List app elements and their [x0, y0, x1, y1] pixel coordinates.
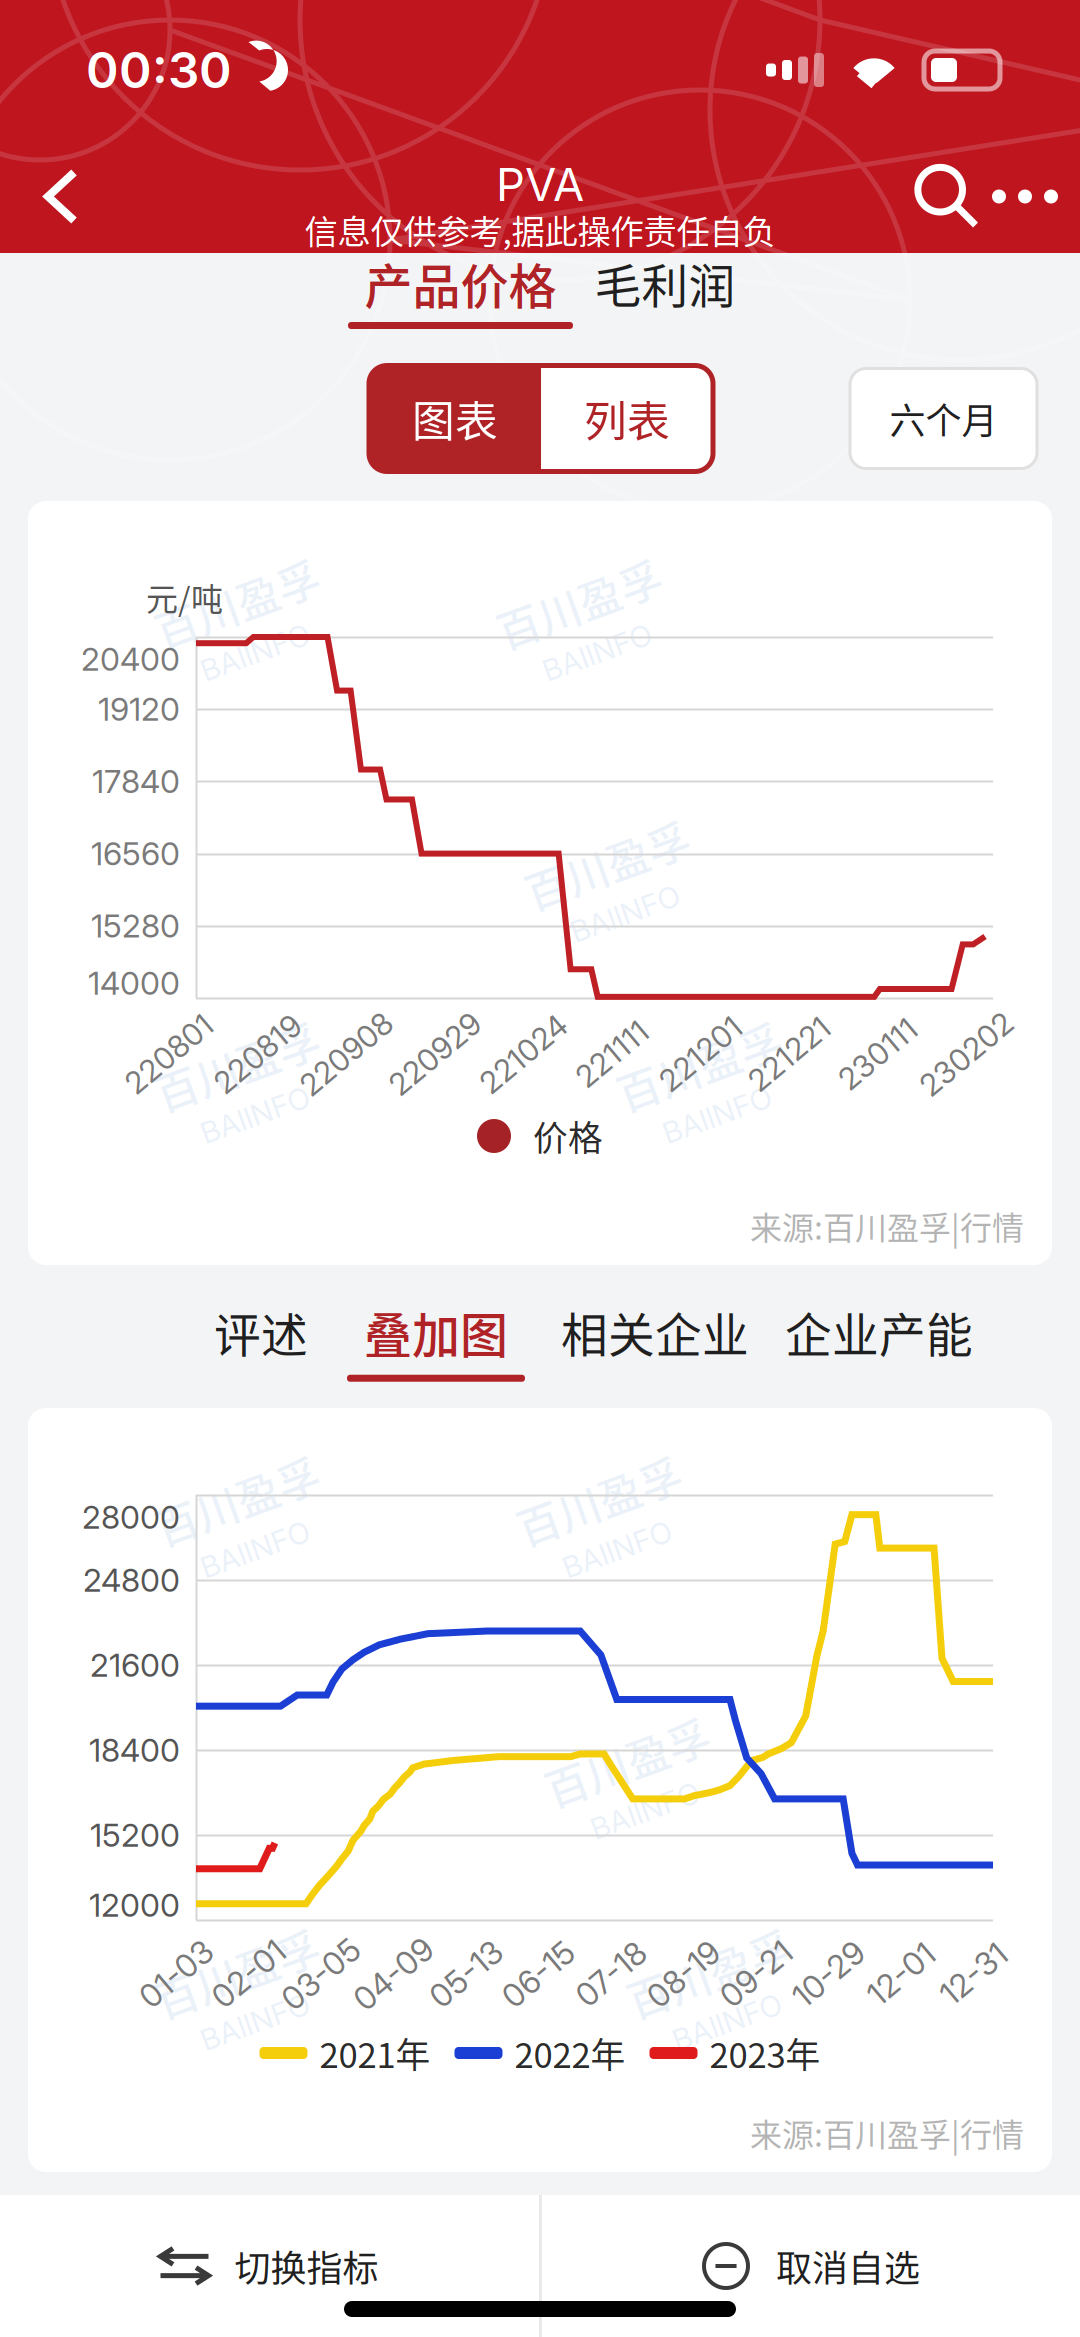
staticText: 产品价格 [364, 248, 556, 318]
staticText: PVA [496, 157, 584, 212]
staticText: 2021年 [319, 2028, 430, 2078]
button[interactable]: 企业产能 [785, 1301, 973, 1370]
staticText: 百川盈孚 [158, 1468, 330, 1530]
staticText: 切换指标 [234, 2240, 378, 2292]
button[interactable]: 评述 [211, 1301, 311, 1370]
staticText: 百川盈孚 [548, 1729, 720, 1791]
staticText: 企业产能 [785, 1298, 973, 1366]
staticText: BAIINFO [187, 1534, 301, 1569]
staticText: 230202 [911, 1035, 1022, 1072]
button[interactable]: 叠加图 [347, 1301, 525, 1370]
button[interactable]: 列表 [541, 365, 713, 471]
staticText: 百川盈孚 [520, 1468, 692, 1530]
staticText: 毛利润 [594, 249, 735, 317]
button[interactable]: 毛利润 [595, 253, 735, 333]
staticText: 20400 [81, 640, 180, 678]
button[interactable]: More [992, 140, 1080, 253]
staticText: 220801 [117, 1035, 221, 1072]
staticText: 220929 [380, 1035, 489, 1072]
staticText: 04-09 [347, 1955, 440, 1993]
staticText: 220908 [291, 1035, 401, 1072]
staticText: BAIINFO [649, 1099, 763, 1135]
staticText: BAIINFO [557, 898, 671, 934]
staticText: 评述 [214, 1298, 308, 1366]
button[interactable]: 产品价格 [348, 253, 573, 333]
staticText: 00:30 [86, 40, 232, 100]
staticText: 价格 [533, 1111, 603, 1161]
staticText: BAIINFO [549, 1534, 663, 1569]
staticText: 百川盈孚 [158, 1033, 330, 1095]
staticText: 来源:百川盈孚|行情 [750, 1203, 1024, 1249]
staticText: 221221 [741, 1035, 837, 1072]
staticText: 信息仅供参考,据此操作责任自负 [304, 205, 775, 254]
button[interactable]: 图表 [369, 365, 541, 471]
staticText: 相关企业 [561, 1298, 749, 1366]
staticText: 15280 [91, 906, 180, 945]
staticText: 12-01 [862, 1955, 939, 1993]
staticText: 220819 [206, 1035, 309, 1072]
staticText: BAIINFO [187, 637, 301, 672]
staticText: 24800 [83, 1561, 180, 1599]
staticText: 21600 [90, 1646, 180, 1684]
staticText: 百川盈孚 [500, 571, 672, 633]
staticText: 230111 [832, 1035, 924, 1072]
button[interactable]: Search [902, 140, 992, 253]
staticText: 221111 [570, 1035, 654, 1072]
button[interactable]: 切换指标 [0, 2195, 539, 2337]
staticText: 05-13 [424, 1955, 508, 1993]
staticText: 12000 [89, 1886, 180, 1924]
staticText: 图表 [412, 388, 498, 449]
button[interactable]: 相关企业 [561, 1301, 749, 1370]
staticText: 叠加图 [364, 1297, 508, 1367]
staticText: 百川盈孚 [620, 1033, 792, 1095]
staticText: 19120 [98, 690, 180, 728]
staticText: 18400 [89, 1731, 180, 1769]
staticText: BAIINFO [187, 2006, 301, 2042]
staticText: 221201 [652, 1035, 749, 1072]
staticText: 08-19 [641, 1955, 725, 1993]
staticText: 16560 [91, 834, 180, 873]
staticText: 百川盈孚 [528, 832, 700, 894]
staticText: 百川盈孚 [630, 1940, 802, 2002]
staticText: 列表 [584, 388, 670, 449]
staticText: BAIINFO [187, 1099, 301, 1135]
staticText: 10-29 [787, 1955, 870, 1993]
staticText: 07-18 [570, 1955, 651, 1993]
staticText: 221024 [472, 1035, 575, 1072]
staticText: BAIINFO [577, 1795, 691, 1831]
staticText: 12-31 [935, 1955, 1011, 1993]
staticText: 02-01 [206, 1955, 291, 1993]
staticText: 01-03 [133, 1955, 218, 1993]
staticText: 六个月 [889, 392, 997, 444]
button[interactable]: 六个月 [850, 368, 1037, 468]
button[interactable]: Back [0, 140, 104, 253]
staticText: 百川盈孚 [158, 571, 330, 633]
staticText: 15200 [90, 1816, 180, 1854]
staticText: 06-15 [496, 1955, 580, 1993]
staticText: 百川盈孚 [158, 1940, 330, 2002]
staticText: 2022年 [514, 2028, 625, 2078]
staticText: 14000 [88, 964, 180, 1002]
button[interactable]: 取消自选 [542, 2195, 1080, 2337]
staticText: 2023年 [709, 2028, 820, 2078]
staticText: 17840 [92, 762, 180, 801]
staticText: BAIINFO [529, 637, 643, 672]
staticText: 03-05 [275, 1955, 367, 1993]
staticText: 元/吨 [146, 574, 223, 620]
staticText: 28000 [82, 1498, 180, 1536]
staticText: BAIINFO [659, 2006, 773, 2042]
staticText: 09-21 [714, 1955, 797, 1993]
staticText: 来源:百川盈孚|行情 [750, 2110, 1024, 2156]
staticText: 取消自选 [776, 2240, 920, 2292]
